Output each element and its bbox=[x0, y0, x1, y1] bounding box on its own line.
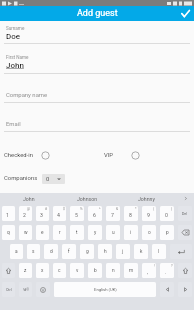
button[interactable]: Move cursor right bbox=[178, 282, 192, 297]
button[interactable]: Emoji bbox=[36, 282, 50, 297]
staticText: Add guest bbox=[77, 8, 118, 19]
button[interactable]: 0 bbox=[160, 206, 174, 221]
button[interactable]: k bbox=[134, 244, 148, 259]
button[interactable]: Johnson bbox=[58, 193, 117, 204]
button[interactable]: m bbox=[124, 263, 138, 278]
button[interactable]: . bbox=[160, 263, 174, 278]
button[interactable]: Backspace bbox=[178, 225, 192, 240]
staticText: n bbox=[112, 268, 115, 274]
staticText: ^ bbox=[99, 207, 101, 211]
staticText: Johnson bbox=[77, 196, 98, 202]
staticText: z bbox=[24, 268, 27, 274]
staticText: # bbox=[45, 207, 48, 211]
staticText: s bbox=[32, 249, 35, 255]
button[interactable]: 5 bbox=[70, 206, 84, 221]
button[interactable]: t bbox=[70, 225, 84, 240]
button[interactable]: Ctrl bbox=[2, 282, 15, 297]
staticText: Surname bbox=[6, 26, 25, 31]
staticText: m bbox=[129, 268, 134, 274]
staticText: t bbox=[76, 230, 78, 236]
button[interactable]: x bbox=[36, 263, 49, 278]
staticText: 1 bbox=[6, 212, 9, 218]
staticText: 2 bbox=[23, 212, 26, 218]
button[interactable]: 7 bbox=[106, 206, 120, 221]
button[interactable]: q bbox=[2, 225, 15, 240]
staticText: 4 bbox=[57, 212, 60, 218]
button[interactable]: l bbox=[152, 244, 166, 259]
button[interactable]: Enter bbox=[170, 244, 192, 259]
button[interactable]: 0 bbox=[42, 174, 65, 184]
button[interactable]: s bbox=[27, 244, 40, 259]
button[interactable]: Shift bbox=[178, 263, 192, 278]
button[interactable]: !#© bbox=[19, 282, 32, 297]
staticText: g bbox=[86, 249, 89, 255]
button[interactable]: z bbox=[19, 263, 32, 278]
button[interactable]: , bbox=[142, 263, 156, 278]
button[interactable]: r bbox=[53, 225, 66, 240]
staticText: q bbox=[7, 230, 10, 236]
button[interactable]: VIP bbox=[104, 149, 140, 162]
button[interactable]: e bbox=[36, 225, 49, 240]
staticText: & bbox=[116, 207, 119, 211]
button[interactable]: g bbox=[80, 244, 94, 259]
button[interactable]: English (UK) bbox=[54, 282, 156, 297]
staticText: John bbox=[23, 196, 35, 202]
staticText: @ bbox=[27, 207, 31, 211]
button[interactable]: Save bbox=[177, 6, 194, 21]
staticText: Doe bbox=[6, 32, 21, 41]
button[interactable]: More suggestions bbox=[176, 193, 194, 204]
button[interactable]: Checked-in bbox=[4, 149, 50, 162]
button[interactable]: 1 bbox=[2, 206, 15, 221]
button[interactable]: j bbox=[116, 244, 130, 259]
staticText: ( bbox=[153, 207, 155, 211]
button[interactable]: Del bbox=[178, 206, 192, 221]
staticText: k bbox=[140, 249, 143, 255]
staticText: r bbox=[59, 230, 61, 236]
button[interactable]: f bbox=[62, 244, 76, 259]
staticText: l bbox=[158, 249, 160, 255]
button[interactable]: 2 bbox=[19, 206, 32, 221]
staticText: ! bbox=[154, 264, 155, 268]
staticText: u bbox=[112, 230, 115, 236]
button[interactable]: v bbox=[70, 263, 84, 278]
staticText: b bbox=[94, 268, 97, 274]
button[interactable]: 9 bbox=[142, 206, 156, 221]
staticText: 3 bbox=[40, 212, 43, 218]
staticText: y bbox=[94, 230, 97, 236]
button[interactable]: Move cursor left bbox=[160, 282, 174, 297]
button[interactable]: 8 bbox=[124, 206, 138, 221]
button[interactable]: 3 bbox=[36, 206, 49, 221]
button[interactable]: w bbox=[19, 225, 32, 240]
staticText: 0 bbox=[165, 212, 168, 218]
staticText: p bbox=[166, 230, 169, 236]
button[interactable]: d bbox=[44, 244, 58, 259]
button[interactable]: b bbox=[88, 263, 102, 278]
button[interactable]: Shift bbox=[2, 263, 15, 278]
button[interactable]: h bbox=[98, 244, 112, 259]
staticText: VIP bbox=[104, 152, 114, 159]
staticText: i bbox=[130, 230, 132, 236]
button[interactable]: 4 bbox=[53, 206, 66, 221]
button[interactable]: y bbox=[88, 225, 102, 240]
staticText: 6 bbox=[93, 212, 96, 218]
staticText: 8 bbox=[129, 212, 132, 218]
button[interactable]: u bbox=[106, 225, 120, 240]
button[interactable]: a bbox=[10, 244, 23, 259]
staticText: ) bbox=[171, 207, 173, 211]
staticText: English (UK) bbox=[94, 287, 117, 292]
button[interactable]: c bbox=[53, 263, 66, 278]
staticText: Company name bbox=[6, 92, 48, 99]
button[interactable]: John bbox=[0, 193, 58, 204]
staticText: Email bbox=[6, 121, 21, 128]
button[interactable]: n bbox=[106, 263, 120, 278]
button[interactable]: Johnny bbox=[117, 193, 176, 204]
staticText: % bbox=[80, 207, 83, 211]
button[interactable]: o bbox=[142, 225, 156, 240]
button[interactable]: p bbox=[160, 225, 174, 240]
staticText: w bbox=[24, 230, 28, 236]
button[interactable]: 6 bbox=[88, 206, 102, 221]
staticText: f bbox=[68, 249, 70, 255]
button[interactable]: i bbox=[124, 225, 138, 240]
staticText: 5 bbox=[75, 212, 78, 218]
staticText: * bbox=[135, 207, 137, 211]
